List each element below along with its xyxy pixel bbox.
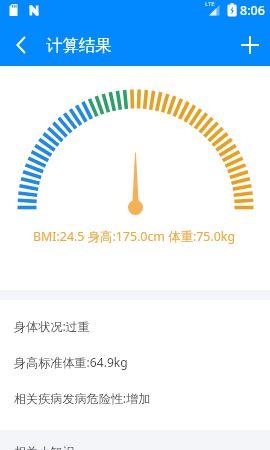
staticText: 相关小知识: [14, 444, 75, 450]
staticText: 相关疾病发病危险性:增加: [14, 390, 151, 407]
staticText: 身体状况:过重: [14, 318, 90, 335]
staticText: 计算结果: [46, 35, 112, 56]
button[interactable]: 身高标准体重:64.9kg: [0, 344, 270, 380]
button[interactable]: 相关疾病发病危险性:增加: [0, 380, 270, 416]
staticText: 8:06: [240, 2, 265, 19]
staticText: 身高标准体重:64.9kg: [14, 354, 128, 371]
button[interactable]: Add: [229, 24, 270, 66]
button[interactable]: Back: [0, 24, 42, 66]
button[interactable]: 身体状况:过重: [0, 308, 270, 344]
staticText: BMI:24.5 身高:175.0cm 体重:75.0kg: [33, 228, 236, 245]
staticText: LTE: [205, 0, 215, 8]
